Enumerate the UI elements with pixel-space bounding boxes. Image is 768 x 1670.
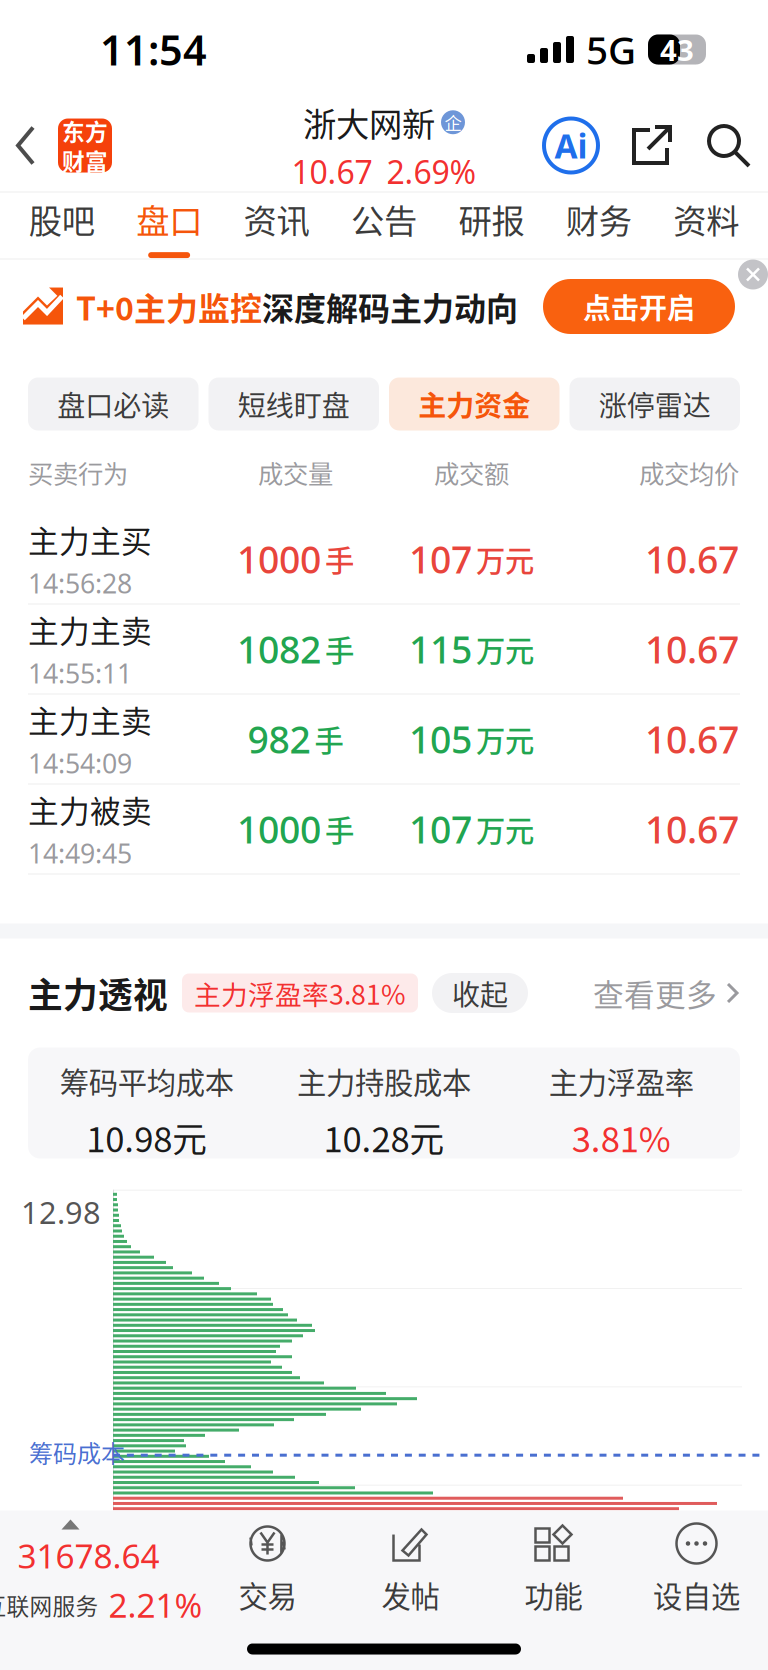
button[interactable]: Close	[738, 259, 768, 289]
button[interactable]: AI assistant	[544, 118, 598, 172]
staticText: 14:56:28	[28, 565, 132, 601]
staticText: 万元	[476, 538, 534, 580]
button[interactable]: 盘口必读	[28, 377, 198, 430]
staticText: 10.98元	[86, 1112, 207, 1162]
staticText: 5G	[586, 24, 636, 75]
staticText: 14:49:45	[28, 835, 132, 871]
staticText: 10.67	[645, 534, 739, 584]
button[interactable]: 资料	[653, 192, 760, 258]
staticText: 盘口	[136, 195, 202, 243]
staticText: 14:54:09	[28, 745, 132, 781]
staticText: 资讯	[244, 195, 310, 243]
staticText: 1000	[237, 804, 321, 854]
staticText: 成交均价	[639, 454, 739, 491]
staticText: 主力主卖	[28, 697, 152, 741]
button[interactable]: 股吧	[8, 192, 115, 258]
staticText: 10.67	[645, 714, 739, 764]
staticText: 主力透视	[28, 968, 168, 1018]
staticText: 107	[409, 534, 472, 584]
button[interactable]: 主力资金	[389, 377, 559, 430]
staticText: 主力主买	[28, 517, 152, 561]
staticText: 1082	[237, 624, 321, 674]
staticText: 企	[444, 110, 461, 135]
staticText: 浙大网新	[303, 98, 435, 146]
staticText: 设自选	[653, 1573, 740, 1616]
button[interactable]: 收起	[432, 973, 528, 1013]
staticText: 10.28元	[323, 1112, 444, 1162]
staticText: 主力浮盈率	[549, 1060, 694, 1102]
button[interactable]: 资讯	[223, 192, 330, 258]
button[interactable]: Search	[705, 122, 752, 169]
staticText: 主力被卖	[28, 787, 152, 831]
staticText: 10.67	[645, 804, 739, 854]
staticText: 11:54	[100, 22, 207, 77]
staticText: 交易	[238, 1573, 296, 1616]
staticText: 短线盯盘	[238, 384, 350, 424]
button[interactable]: 短线盯盘	[208, 377, 379, 430]
staticText: 手	[325, 808, 354, 850]
staticText: 财务	[566, 195, 632, 243]
staticText: 2.69%	[386, 150, 476, 193]
button[interactable]: 功能	[482, 1510, 625, 1670]
staticText: 深度解码主力动向	[262, 283, 518, 330]
staticText: 功能	[524, 1573, 582, 1616]
staticText: 43	[660, 30, 694, 69]
staticText: 105	[409, 714, 472, 764]
staticText: T+0主力监控	[76, 283, 262, 330]
staticText: 10.67	[645, 624, 739, 674]
staticText: 3.81%	[572, 1112, 671, 1162]
staticText: 2.21%	[108, 1583, 202, 1627]
staticText: 收起	[452, 973, 508, 1013]
staticText: 手	[314, 718, 343, 760]
button[interactable]: Back	[0, 123, 58, 167]
staticText: 万元	[476, 808, 534, 850]
staticText: 互联网服务	[0, 1588, 98, 1621]
button[interactable]: 研报	[438, 192, 545, 258]
staticText: 982	[247, 714, 310, 764]
staticText: 主力持股成本	[297, 1060, 471, 1102]
staticText: 1000	[237, 534, 321, 584]
staticText: 手	[325, 628, 354, 670]
staticText: 点击开启	[583, 286, 695, 327]
staticText: 成交量	[258, 454, 333, 491]
staticText: Ai	[554, 123, 587, 168]
button[interactable]: 公告	[330, 192, 438, 258]
staticText: 查看更多	[593, 971, 717, 1015]
staticText: 资料	[673, 195, 739, 243]
staticText: 14:55:11	[28, 655, 132, 691]
staticText: 31678.64	[17, 1533, 159, 1578]
button[interactable]: 盘口	[115, 192, 223, 258]
staticText: 公告	[351, 195, 417, 243]
staticText: 手	[325, 538, 354, 580]
button[interactable]: 涨停雷达	[569, 377, 740, 430]
button[interactable]: Share	[598, 122, 705, 169]
staticText: 主力浮盈率3.81%	[194, 974, 406, 1012]
staticText: 财富	[62, 144, 108, 177]
staticText: 发帖	[381, 1573, 439, 1616]
staticText: 107	[409, 804, 472, 854]
staticText: 筹码平均成本	[60, 1060, 234, 1102]
staticText: 万元	[476, 718, 534, 760]
button[interactable]: 点击开启	[543, 279, 735, 334]
staticText: 股吧	[29, 195, 95, 243]
staticText: 成交额	[434, 454, 509, 491]
button[interactable]: 设自选	[625, 1510, 768, 1670]
button[interactable]: 查看更多	[593, 971, 740, 1015]
staticText: 涨停雷达	[599, 384, 711, 424]
staticText: 东方	[62, 114, 108, 147]
button[interactable]: 交易	[196, 1510, 339, 1670]
staticText: 10.67	[291, 150, 372, 193]
staticText: 12.98	[21, 1192, 101, 1232]
staticText: 买卖行为	[28, 454, 128, 491]
staticText: 主力资金	[418, 384, 530, 424]
staticText: 研报	[458, 195, 524, 243]
button[interactable]: 财务	[545, 192, 652, 258]
staticText: 115	[409, 624, 472, 674]
button[interactable]: 发帖	[339, 1510, 482, 1670]
staticText: 万元	[476, 628, 534, 670]
staticText: 主力主卖	[28, 607, 152, 651]
staticText: 筹码成本	[29, 1435, 125, 1469]
staticText: 盘口必读	[57, 384, 169, 424]
